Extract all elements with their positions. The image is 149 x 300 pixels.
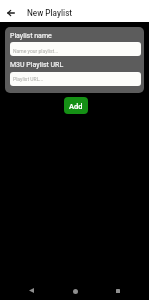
staticText: Name your playlist...: [13, 48, 59, 54]
button[interactable]: Playlist URL...: [10, 72, 141, 86]
button[interactable]: Back: [0, 0, 22, 22]
staticText: M3U Playlist URL: [10, 61, 64, 69]
button[interactable]: Recent apps: [107, 280, 129, 300]
staticText: New Playlist: [27, 8, 73, 18]
button[interactable]: Home: [64, 280, 86, 300]
staticText: Playlist name: [10, 32, 52, 40]
staticText: Add: [69, 102, 83, 111]
button[interactable]: Add: [64, 97, 88, 114]
button[interactable]: Name your playlist...: [10, 42, 141, 56]
staticText: Playlist URL...: [13, 76, 44, 82]
button[interactable]: Back: [20, 279, 42, 300]
